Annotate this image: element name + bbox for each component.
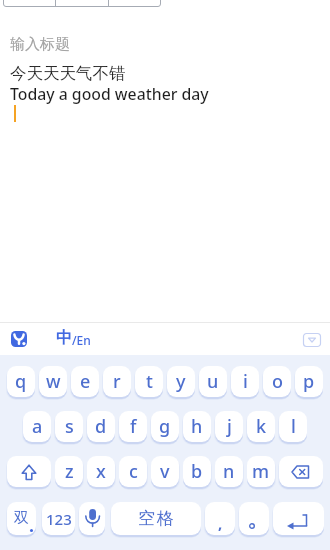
- button[interactable]: 双: [7, 502, 36, 535]
- staticText: i: [243, 369, 248, 394]
- button[interactable]: q: [7, 366, 35, 397]
- button[interactable]: j: [215, 411, 243, 442]
- staticText: /En: [72, 332, 91, 348]
- staticText: g: [159, 414, 171, 439]
- staticText: 今天天天气不错: [10, 63, 126, 84]
- button[interactable]: [239, 502, 269, 535]
- staticText: q: [15, 369, 27, 394]
- staticText: k: [256, 414, 267, 439]
- button[interactable]: [7, 456, 51, 487]
- staticText: w: [46, 369, 61, 394]
- button[interactable]: [11, 331, 27, 347]
- staticText: y: [176, 369, 186, 394]
- button[interactable]: [79, 502, 105, 535]
- staticText: f: [130, 414, 137, 439]
- button[interactable]: y: [167, 366, 195, 397]
- staticText: z: [65, 459, 74, 484]
- button[interactable]: 123: [42, 502, 75, 535]
- button[interactable]: i: [231, 366, 259, 397]
- staticText: 空格: [137, 508, 175, 529]
- button[interactable]: [279, 456, 323, 487]
- staticText: h: [191, 414, 203, 439]
- staticText: l: [291, 414, 296, 439]
- staticText: ,: [218, 513, 223, 533]
- button[interactable]: v: [151, 456, 179, 487]
- button[interactable]: d: [87, 411, 115, 442]
- staticText: u: [207, 369, 219, 394]
- button[interactable]: r: [103, 366, 131, 397]
- button[interactable]: m: [247, 456, 275, 487]
- staticText: r: [113, 369, 121, 394]
- staticText: v: [160, 459, 170, 484]
- staticText: c: [129, 459, 138, 484]
- staticText: p: [303, 369, 315, 394]
- staticText: j: [227, 414, 232, 439]
- button[interactable]: a: [23, 411, 51, 442]
- button[interactable]: s: [55, 411, 83, 442]
- button[interactable]: b: [183, 456, 211, 487]
- button[interactable]: t: [135, 366, 163, 397]
- button[interactable]: f: [119, 411, 147, 442]
- button[interactable]: 空格: [111, 502, 201, 535]
- staticText: t: [146, 369, 153, 394]
- button[interactable]: n: [215, 456, 243, 487]
- button[interactable]: c: [119, 456, 147, 487]
- button[interactable]: o: [263, 366, 291, 397]
- staticText: n: [223, 459, 235, 484]
- button[interactable]: h: [183, 411, 211, 442]
- button[interactable]: [273, 502, 324, 535]
- button[interactable]: l: [279, 411, 307, 442]
- button[interactable]: [303, 333, 321, 347]
- staticText: Today a good weather day: [10, 83, 209, 105]
- staticText: 123: [46, 509, 72, 529]
- staticText: 双: [14, 509, 29, 528]
- staticText: d: [95, 414, 107, 439]
- button[interactable]: e: [71, 366, 99, 397]
- button[interactable]: x: [87, 456, 115, 487]
- staticText: b: [191, 459, 203, 484]
- button[interactable]: u: [199, 366, 227, 397]
- staticText: 输入标题: [10, 35, 70, 54]
- staticText: o: [272, 369, 283, 394]
- staticText: s: [65, 414, 74, 439]
- staticText: a: [32, 414, 43, 439]
- button[interactable]: ,: [205, 502, 235, 535]
- button[interactable]: k: [247, 411, 275, 442]
- staticText: 中: [56, 328, 72, 348]
- button[interactable]: g: [151, 411, 179, 442]
- button[interactable]: 中: [56, 327, 91, 349]
- button[interactable]: z: [55, 456, 83, 487]
- staticText: x: [96, 459, 106, 484]
- staticText: e: [80, 369, 91, 394]
- button[interactable]: p: [295, 366, 323, 397]
- staticText: m: [252, 459, 270, 484]
- button[interactable]: w: [39, 366, 67, 397]
